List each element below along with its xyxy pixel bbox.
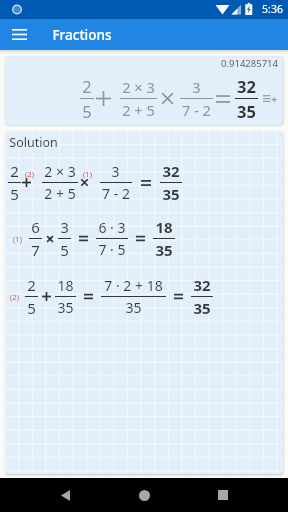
staticText: 32 — [237, 75, 256, 97]
staticText: 2 + 5 — [44, 184, 76, 203]
staticText: Solution — [9, 134, 58, 151]
staticText: 18 — [57, 276, 74, 295]
staticText: 35 — [155, 240, 173, 260]
staticText: 2 — [27, 275, 36, 295]
staticText: 2 — [10, 161, 19, 181]
button[interactable]: Back — [48, 478, 82, 512]
staticText: 35 — [193, 298, 211, 318]
staticText: 5 — [27, 298, 36, 318]
staticText: 5 — [82, 100, 92, 122]
staticText: 32 — [193, 275, 211, 295]
staticText: 7 · 2 + 18 — [104, 276, 163, 295]
staticText: 5:36 — [262, 2, 283, 16]
staticText: 2 × 3 — [122, 77, 155, 97]
staticText: 2 + 5 — [122, 100, 155, 120]
staticText: 7 — [31, 240, 40, 260]
staticText: 3 — [192, 77, 201, 97]
staticText: 35 — [162, 184, 180, 204]
staticText: Fractions — [52, 26, 112, 44]
staticText: 35 — [57, 298, 74, 317]
staticText: 2 × 3 — [44, 162, 76, 181]
staticText: 35 — [125, 298, 142, 317]
button[interactable]: 0.914285714 — [5, 56, 283, 125]
staticText: 7 - 2 — [182, 100, 211, 120]
button[interactable]: Home — [127, 478, 161, 512]
staticText: 3 — [60, 217, 69, 237]
staticText: (1) — [13, 234, 22, 244]
button[interactable]: Open navigation drawer — [0, 19, 38, 50]
staticText: 0.914285714 — [221, 57, 278, 70]
staticText: 6 — [31, 217, 40, 237]
button[interactable]: Recent apps — [206, 478, 240, 512]
staticText: 5 — [60, 240, 69, 260]
staticText: 18 — [155, 217, 173, 237]
staticText: 7 - 2 — [102, 184, 130, 203]
staticText: 6 · 3 — [98, 218, 126, 237]
staticText: (1) — [83, 169, 92, 179]
staticText: 2 — [82, 75, 92, 97]
staticText: (2) — [25, 169, 34, 179]
staticText: 3 — [111, 162, 120, 181]
staticText: 5 — [10, 184, 19, 204]
staticText: (2) — [10, 292, 19, 302]
staticText: 7 · 5 — [98, 240, 126, 259]
staticText: 35 — [237, 100, 256, 122]
staticText: 32 — [162, 161, 180, 181]
